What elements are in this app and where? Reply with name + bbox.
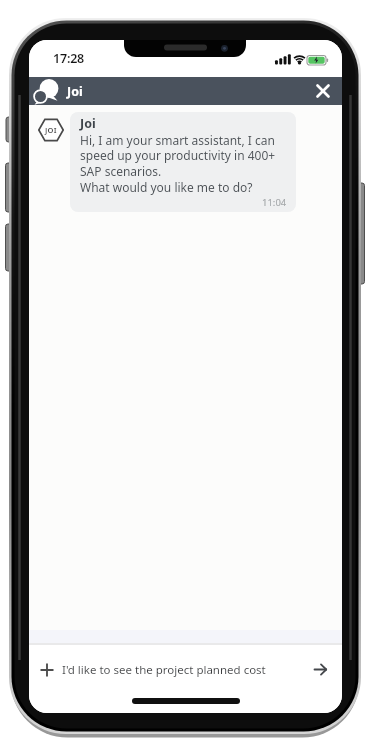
staticText: I'd like to see the project planned cost (62, 662, 266, 678)
staticText: Joi (67, 83, 83, 100)
staticText: 11:04 (262, 196, 287, 209)
button[interactable]: I'd like to see the project planned cost (40, 659, 327, 680)
staticText: Joi (80, 115, 96, 132)
button[interactable] (309, 77, 337, 105)
staticText: 17:28 (53, 50, 85, 67)
button[interactable]: Joi (70, 112, 296, 212)
staticText: JOI (45, 125, 57, 135)
staticText: Hi, I am your smart assistant, I can spe… (80, 132, 276, 196)
